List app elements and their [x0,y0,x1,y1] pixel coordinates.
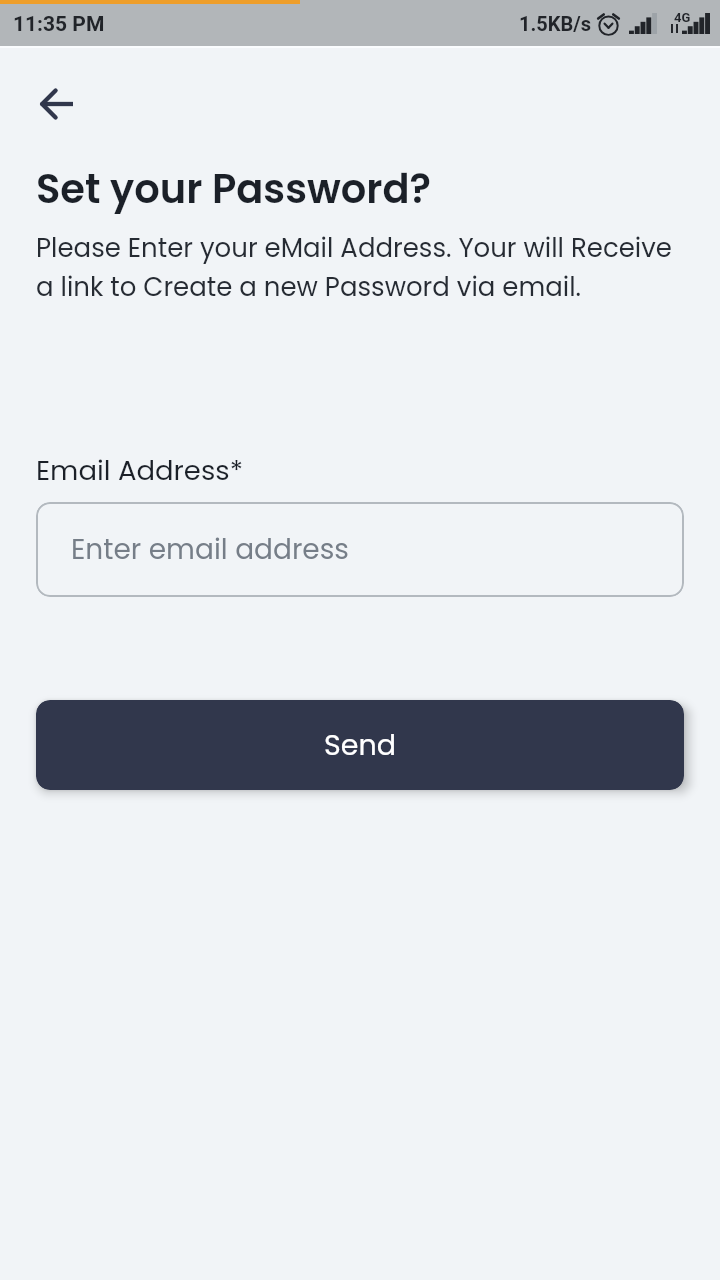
button[interactable]: Back [22,70,90,138]
staticText: 1.5KB/s [519,12,592,35]
button[interactable]: Send [36,700,684,790]
staticText: Enter email address [71,530,349,569]
staticText: 11:35 PM [13,12,105,37]
staticText: Email Address* [36,451,243,489]
button[interactable]: Enter email address [36,502,684,597]
staticText: Please Enter your eMail Address. Your wi… [36,230,684,305]
staticText: Set your Password? [36,161,432,217]
staticText: 4G [674,10,691,25]
staticText: Send [324,725,396,765]
